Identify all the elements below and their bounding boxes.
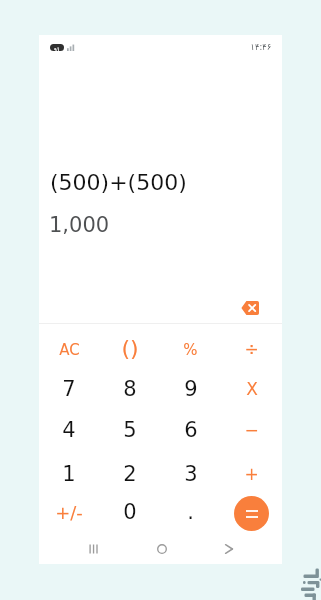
staticText: 7: [62, 377, 76, 401]
staticText: X: [246, 379, 258, 399]
staticText: %: [183, 341, 198, 358]
button[interactable]: 2: [99, 453, 160, 495]
staticText: AC: [59, 341, 80, 358]
button[interactable]: +: [221, 453, 282, 495]
staticText: .: [187, 500, 194, 524]
staticText: 1,000: [49, 213, 110, 237]
staticText: 0: [123, 500, 137, 524]
button[interactable]: Equals: [234, 496, 269, 531]
button[interactable]: 8: [99, 368, 160, 410]
button[interactable]: Back: [218, 538, 240, 560]
staticText: 3: [184, 462, 198, 486]
button[interactable]: %: [160, 328, 221, 370]
button[interactable]: Backspace: [236, 295, 264, 320]
button[interactable]: AC: [39, 328, 99, 370]
button[interactable]: 9: [160, 368, 221, 410]
button[interactable]: 4: [39, 409, 99, 451]
button[interactable]: ÷: [221, 328, 282, 370]
staticText: 5: [123, 418, 137, 442]
staticText: 8: [123, 377, 137, 401]
button[interactable]: 3: [160, 453, 221, 495]
button[interactable]: 6: [160, 409, 221, 451]
button[interactable]: .: [160, 491, 221, 533]
button[interactable]: Home: [151, 538, 173, 560]
button[interactable]: −: [221, 409, 282, 451]
button[interactable]: 5: [99, 409, 160, 451]
staticText: −: [244, 420, 259, 440]
staticText: ÷: [244, 339, 259, 359]
button[interactable]: +/-: [39, 491, 99, 533]
button[interactable]: Equals: [221, 491, 282, 533]
staticText: 4: [62, 418, 76, 442]
button[interactable]: (): [99, 328, 160, 370]
button[interactable]: 1: [39, 453, 99, 495]
staticText: 6: [184, 418, 198, 442]
staticText: ۱۴:۴۶: [250, 38, 272, 56]
staticText: (): [121, 336, 139, 362]
staticText: +/-: [55, 502, 83, 523]
staticText: (500)+(500): [50, 170, 187, 196]
button[interactable]: 7: [39, 368, 99, 410]
button[interactable]: 0: [99, 491, 160, 533]
staticText: 9: [184, 377, 198, 401]
button[interactable]: Recents: [83, 538, 105, 560]
button[interactable]: X: [221, 368, 282, 410]
staticText: +: [244, 464, 259, 484]
staticText: 1: [62, 462, 76, 486]
staticText: 2: [123, 462, 137, 486]
staticText: ۹۱: [54, 44, 60, 51]
